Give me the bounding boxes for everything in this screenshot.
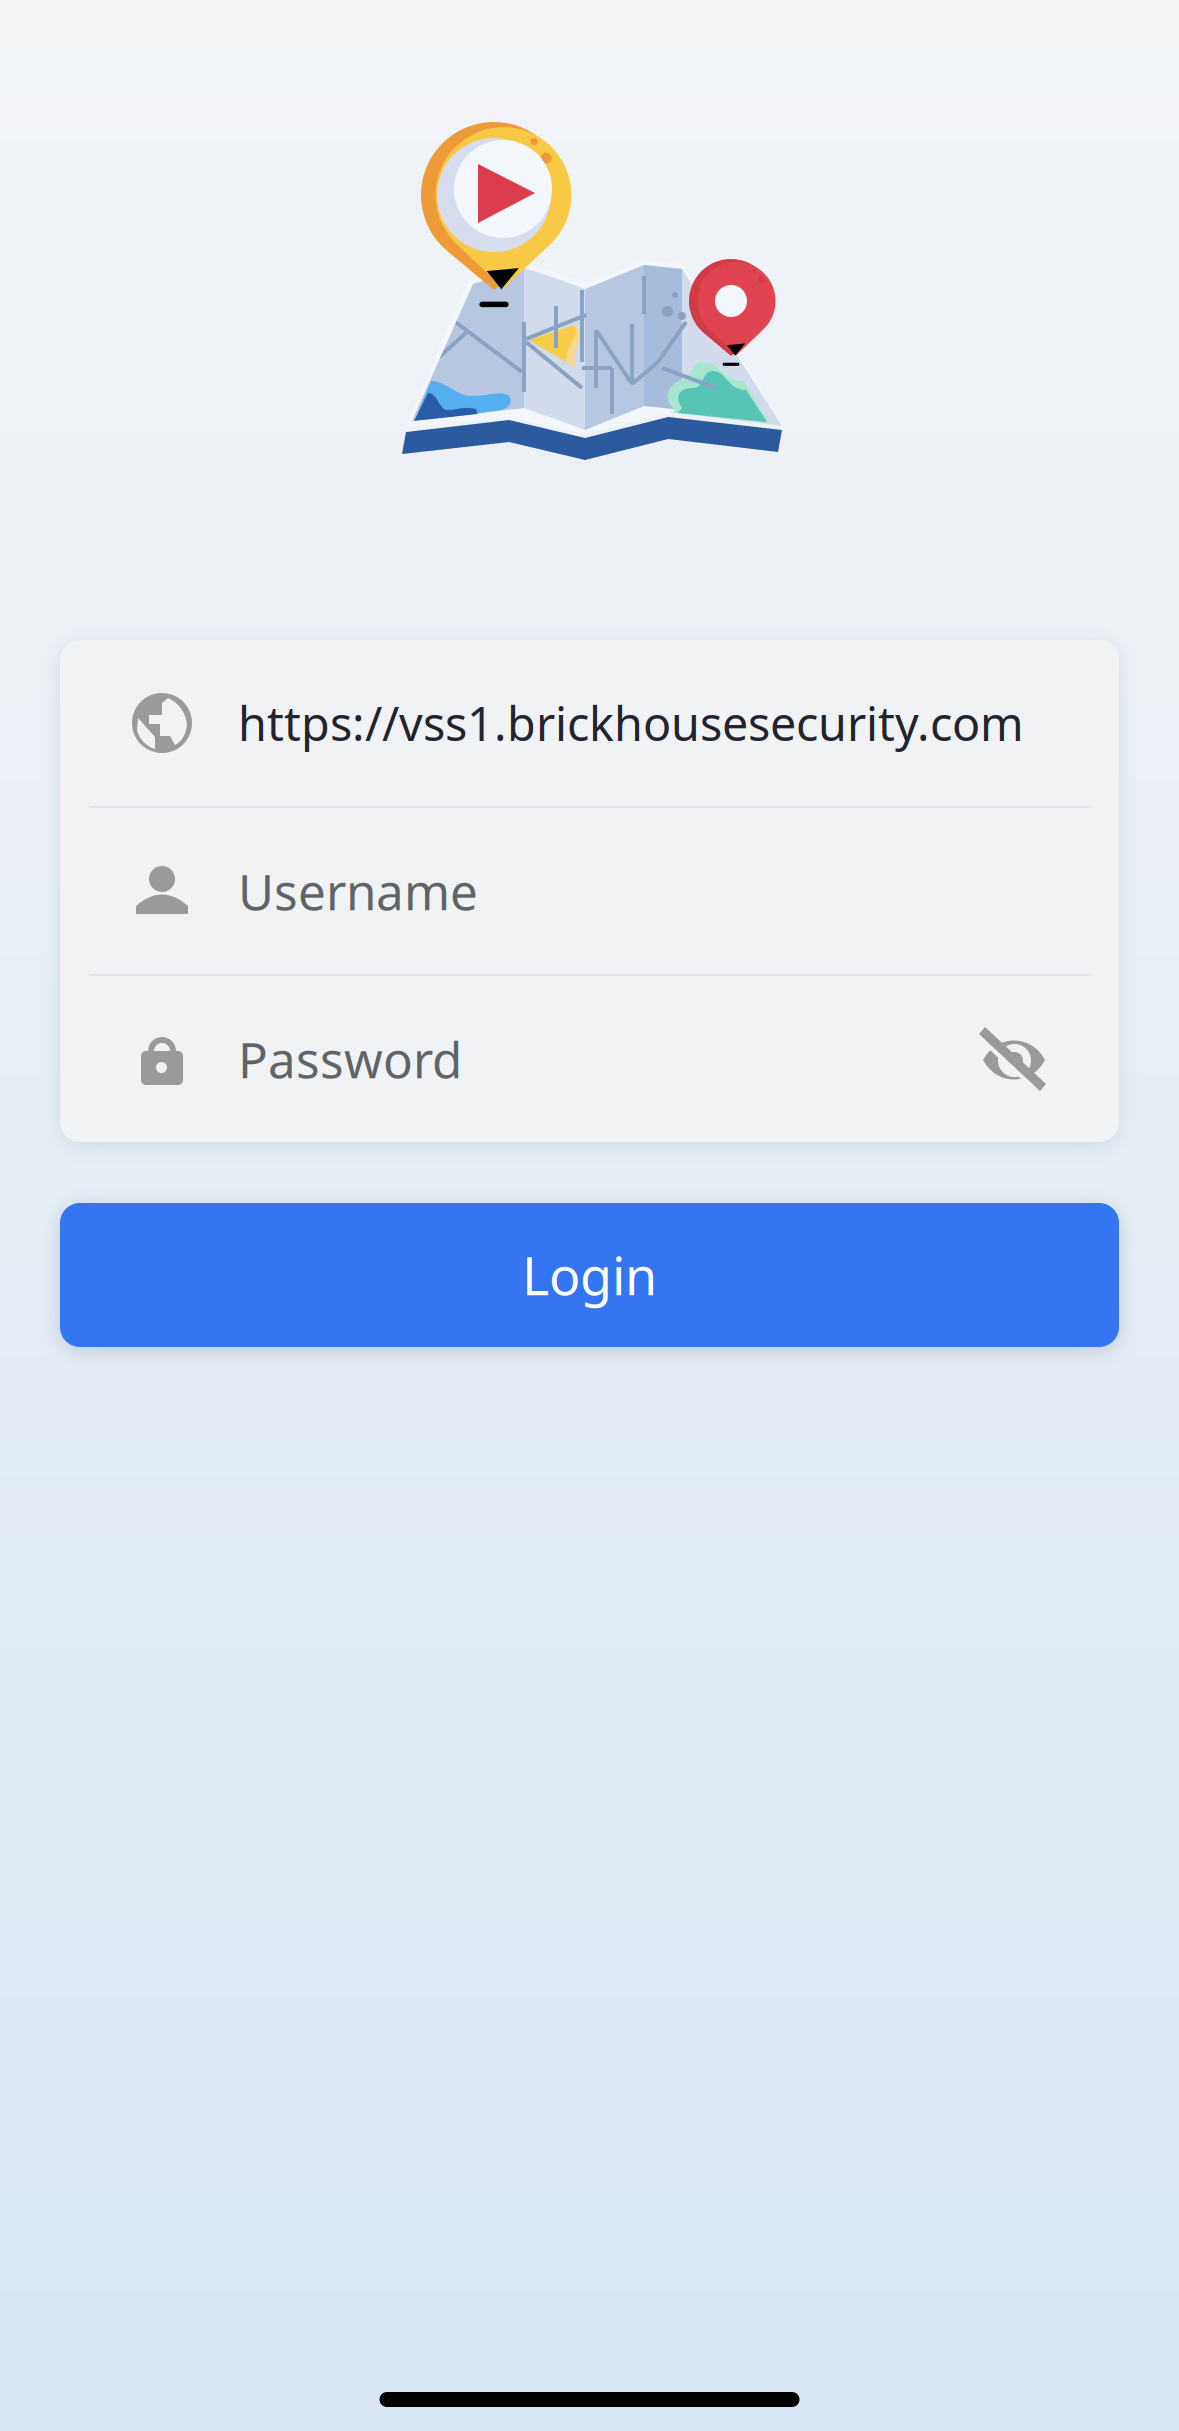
staticText: https://vss1.brickhousesecurity.com (238, 692, 1024, 754)
staticText: Password (238, 1026, 462, 1092)
staticText: Login (522, 1240, 657, 1310)
button[interactable]: Login (60, 1203, 1119, 1347)
staticText: Username (238, 858, 478, 924)
button[interactable]: Show password (981, 1026, 1047, 1092)
